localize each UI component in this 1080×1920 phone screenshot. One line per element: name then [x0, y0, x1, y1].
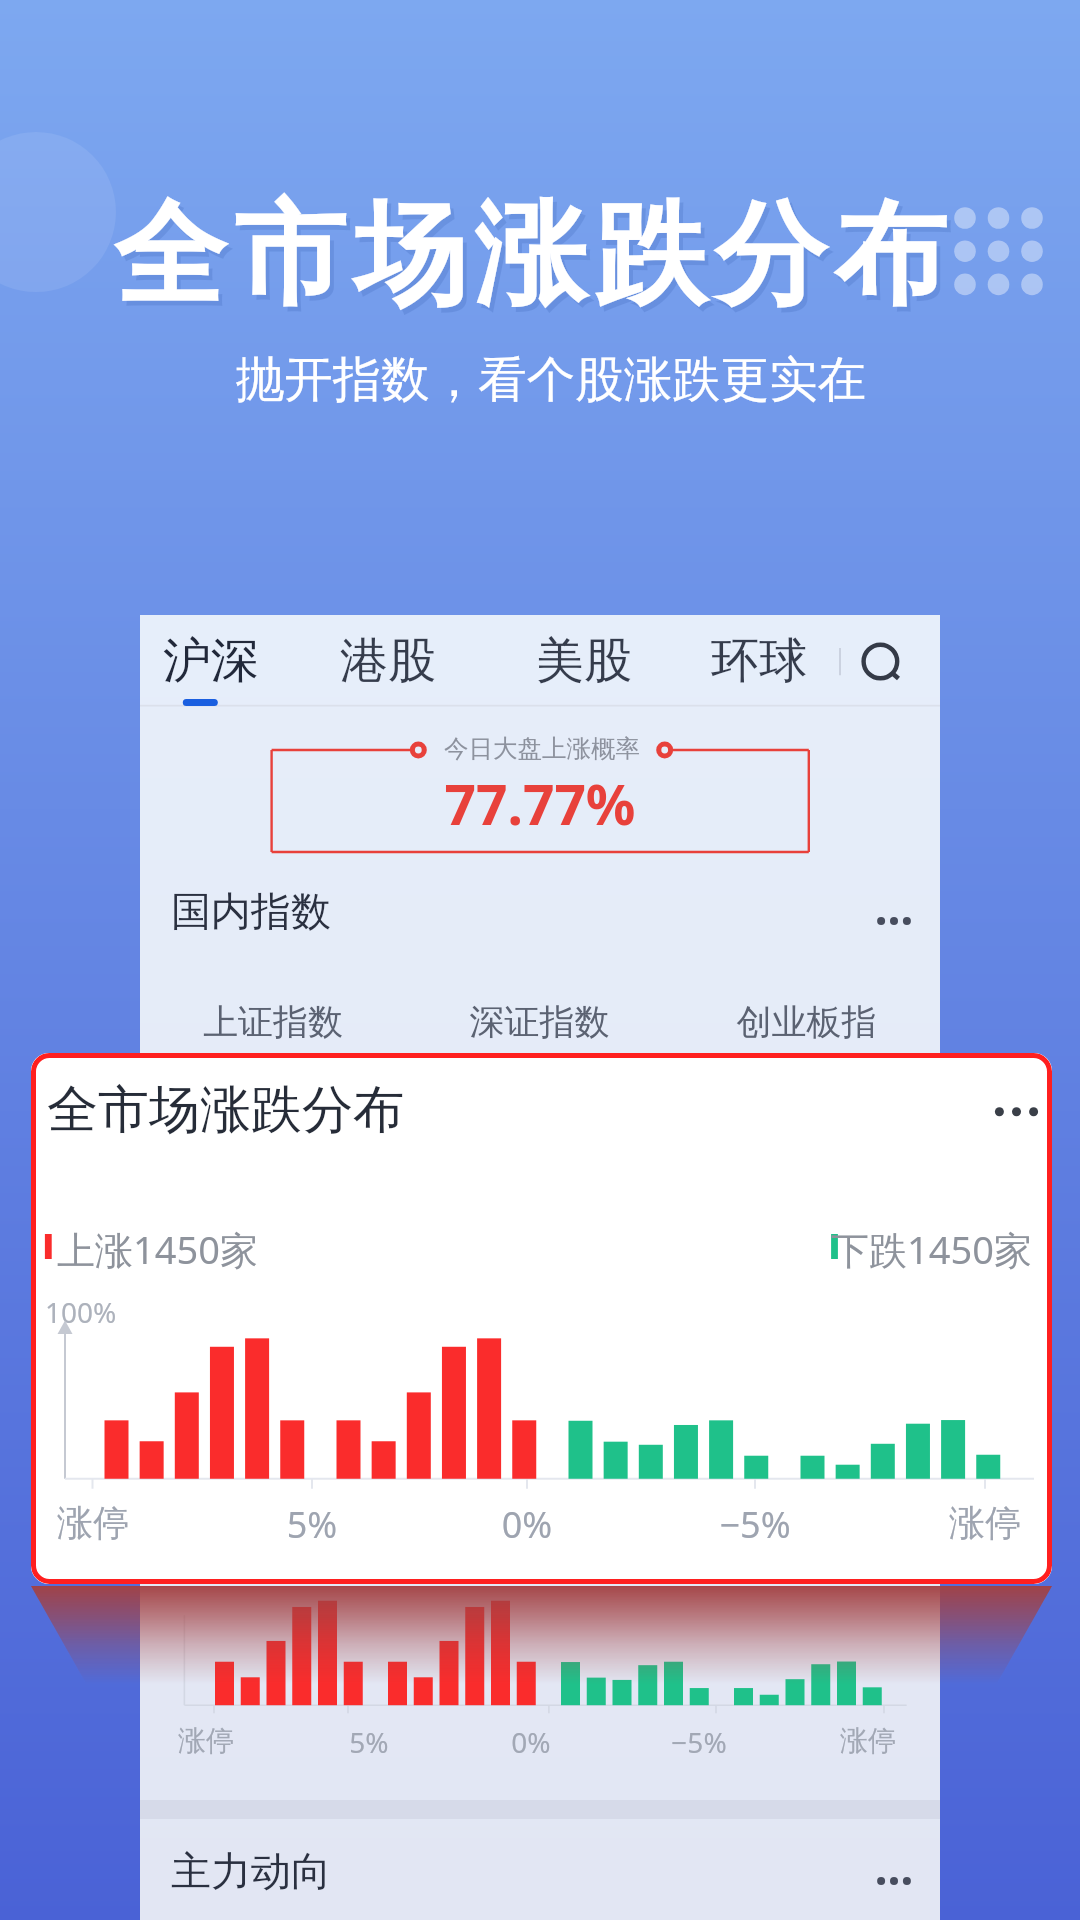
staticText: 全市场涨跌分布	[118, 190, 959, 331]
button[interactable]: 美股	[518, 615, 650, 707]
button[interactable]: More options	[979, 1082, 1045, 1142]
staticText: 沪深	[163, 631, 259, 691]
staticText: 国内指数	[171, 886, 331, 936]
staticText: 100%	[45, 1293, 117, 1331]
staticText: 5%	[289, 1723, 449, 1761]
staticText: 全市场涨跌分布	[114, 185, 955, 326]
staticText: 0%	[447, 1500, 607, 1549]
staticText: 上涨1450家	[57, 1223, 258, 1275]
staticText: 涨停	[126, 1723, 286, 1758]
staticText: 今日大盘上涨概率	[444, 733, 640, 764]
staticText: 环球	[711, 631, 807, 691]
staticText: 深证指数	[406, 1000, 673, 1044]
button[interactable]: 沪深	[145, 615, 277, 707]
staticText: 0%	[451, 1723, 611, 1761]
staticText: 下跌1450家	[732, 1223, 1032, 1275]
button[interactable]: 环球	[693, 615, 825, 707]
staticText: 主力动向	[171, 1846, 331, 1896]
staticText: 全市场涨跌分布	[47, 1078, 404, 1142]
button[interactable]: 全市场涨跌分布	[31, 1053, 1052, 1584]
staticText: 涨停	[788, 1723, 948, 1758]
button[interactable]: 主力动向	[140, 1831, 940, 1911]
staticText: 涨停	[905, 1500, 1052, 1545]
staticText: 5%	[232, 1500, 392, 1549]
staticText: 创业板指	[673, 1000, 940, 1044]
staticText: 77.77%	[271, 766, 809, 841]
staticText: 抛开指数，看个股涨跌更实在	[11, 349, 1080, 410]
staticText: 上证指数	[140, 1000, 406, 1044]
button[interactable]: 港股	[322, 615, 454, 707]
staticText: −5%	[619, 1723, 779, 1761]
staticText: −5%	[675, 1500, 835, 1549]
staticText: 涨停	[31, 1500, 173, 1545]
button[interactable]: 国内指数	[140, 871, 940, 951]
staticText: 美股	[536, 631, 632, 691]
staticText: 港股	[340, 631, 436, 691]
